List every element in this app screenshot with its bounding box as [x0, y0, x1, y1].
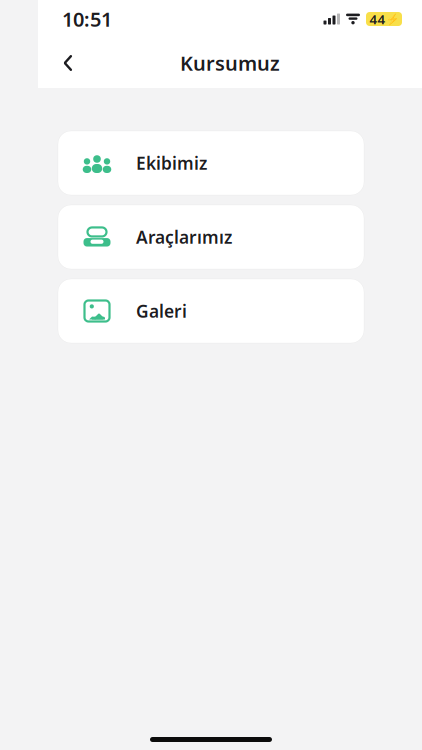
staticText: Ekibimiz	[136, 151, 207, 174]
staticText: 10:51	[62, 6, 112, 32]
staticText: Galeri	[136, 299, 187, 322]
button[interactable]: Galeri	[58, 279, 364, 343]
staticText: Araçlarımız	[136, 225, 232, 248]
button[interactable]: Ekibimiz	[58, 131, 364, 195]
button[interactable]: Araçlarımız	[58, 205, 364, 269]
staticText: Kursumuz	[180, 50, 280, 76]
staticText: ⚡	[385, 13, 398, 25]
staticText: 44	[369, 10, 385, 28]
button[interactable]: Back	[46, 41, 90, 85]
